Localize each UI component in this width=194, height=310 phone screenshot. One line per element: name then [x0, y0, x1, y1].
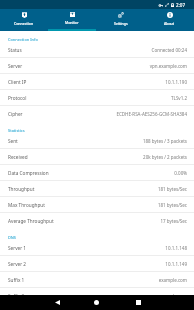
staticText: Max Throughput	[8, 202, 45, 208]
button[interactable]: Cipher	[0, 106, 194, 122]
button[interactable]: Data Compression	[0, 165, 194, 180]
button[interactable]: Settings	[96, 9, 145, 31]
staticText: 17 bytes/Sec	[160, 218, 187, 224]
staticText: 20k bytes / 2 packets	[143, 154, 187, 160]
staticText: TLSv1.2	[171, 95, 187, 101]
button[interactable]: Protocol	[0, 90, 194, 105]
staticText: 2:07	[176, 2, 186, 8]
button[interactable]: Max Throughput	[0, 197, 194, 212]
button[interactable]: Suffix 1	[0, 272, 194, 287]
button[interactable]: Server 2	[0, 256, 194, 271]
staticText: DNS	[8, 235, 17, 240]
button[interactable]: Status	[0, 42, 194, 57]
staticText: Throughput	[8, 186, 35, 192]
staticText: ECDHE-RSA-AES256-GCM-SHA384	[116, 111, 187, 117]
button[interactable]: Client IP	[0, 74, 194, 89]
button[interactable]: Server 1	[0, 240, 194, 255]
button[interactable]: Throughput	[0, 181, 194, 196]
button[interactable]: Monitor	[48, 9, 96, 31]
staticText: corp.example.com	[147, 293, 187, 295]
staticText: Status	[8, 47, 22, 53]
staticText: 0.00%	[174, 170, 187, 176]
staticText: 10.1.1.149	[165, 261, 187, 267]
button[interactable]: Back	[48, 295, 67, 310]
button[interactable]: Server	[0, 58, 194, 73]
staticText: Suffix 1	[8, 277, 25, 283]
staticText: Connected 00:24	[151, 47, 187, 53]
button[interactable]: Recents	[129, 295, 148, 310]
button[interactable]: Home	[87, 295, 106, 310]
staticText: Monitor	[65, 20, 79, 25]
button[interactable]: Average Throughput	[0, 213, 194, 229]
staticText: Data Compression	[8, 170, 49, 176]
staticText: Cipher	[8, 111, 23, 117]
staticText: Client IP	[8, 79, 27, 85]
staticText: Protocol	[8, 95, 27, 101]
staticText: Average Throughput	[8, 218, 54, 224]
staticText: Server	[8, 63, 23, 69]
staticText: 181 bytes/Sec	[157, 202, 187, 208]
staticText: vpn.example.com	[149, 63, 187, 69]
staticText: Settings	[114, 21, 128, 26]
staticText: Statistics	[8, 128, 25, 133]
staticText: Server 2	[8, 261, 27, 267]
button[interactable]: Received	[0, 149, 194, 164]
button[interactable]: Sent	[0, 133, 194, 148]
button[interactable]: Connection	[0, 9, 48, 31]
staticText: About	[164, 21, 175, 26]
staticText: example.com	[158, 277, 187, 283]
button[interactable]: About	[145, 9, 194, 31]
staticText: Connection Info	[8, 37, 38, 42]
staticText: 181 bytes/Sec	[157, 186, 187, 192]
staticText: Sent	[8, 138, 18, 144]
staticText: 10.1.1.190	[165, 79, 187, 85]
button[interactable]: Suffix 2	[0, 288, 194, 295]
staticText: Server 1	[8, 245, 27, 251]
staticText: 188 bytes / 3 packets	[142, 138, 187, 144]
staticText: 10.1.1.148	[165, 245, 187, 251]
staticText: Suffix 2	[8, 293, 25, 295]
staticText: Received	[8, 154, 28, 160]
staticText: Connection	[14, 21, 34, 26]
